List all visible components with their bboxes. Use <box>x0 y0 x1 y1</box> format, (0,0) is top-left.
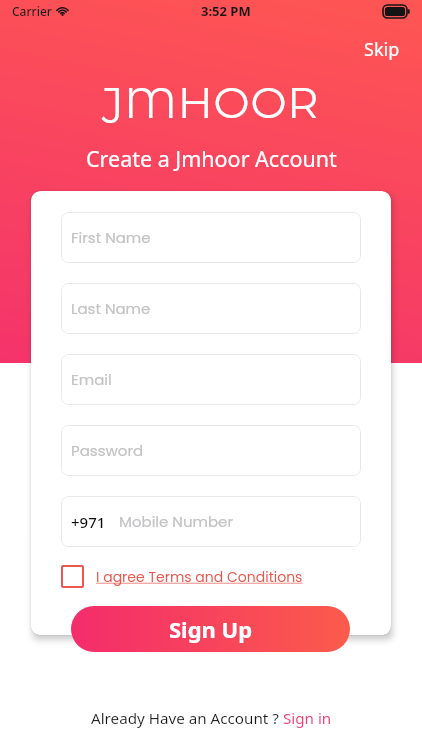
staticText: +971 <box>71 512 106 532</box>
staticText: Already Have an Account ? <box>91 708 283 729</box>
staticText: Skip <box>364 37 400 62</box>
button[interactable]: Agree to terms checkbox <box>61 565 84 588</box>
button[interactable]: Sign Up <box>71 606 350 652</box>
staticText: Sign Up <box>169 614 253 644</box>
staticText: Password <box>71 440 144 461</box>
staticText: Mobile Number <box>119 511 233 532</box>
staticText: Carrier <box>12 3 52 19</box>
staticText: Last Name <box>71 298 151 319</box>
staticText: First Name <box>71 227 151 248</box>
staticText: 3:52 PM <box>201 2 251 20</box>
staticText: Create a Jmhoor Account <box>86 144 337 173</box>
staticText: JMHOOR <box>102 76 320 128</box>
button[interactable]: Skip <box>358 33 406 66</box>
button[interactable]: Sign in <box>283 708 332 729</box>
button[interactable]: I agree Terms and Conditions <box>96 567 303 587</box>
button[interactable]: First Name <box>61 212 361 263</box>
button[interactable]: Email <box>61 354 361 405</box>
staticText: Email <box>71 369 112 390</box>
button[interactable]: Last Name <box>61 283 361 334</box>
button[interactable]: Password <box>61 425 361 476</box>
button[interactable]: +971 <box>61 496 361 547</box>
